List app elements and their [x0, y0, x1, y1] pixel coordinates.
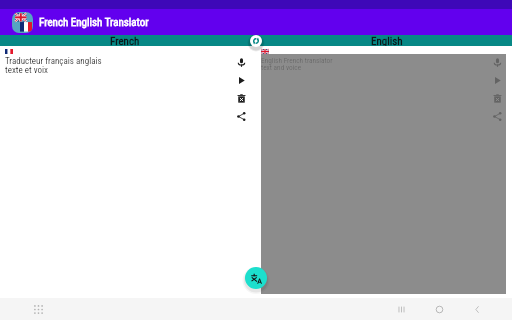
button[interactable]: Share: [488, 107, 506, 125]
button[interactable]: Back: [470, 302, 484, 316]
button[interactable]: Home: [432, 302, 446, 316]
staticText: English French translator text and voice: [261, 56, 333, 72]
button[interactable]: French: [0, 35, 250, 46]
button[interactable]: Delete: [488, 89, 506, 107]
button[interactable]: Play: [488, 71, 506, 89]
button[interactable]: Swap languages: [250, 35, 262, 47]
button[interactable]: App icon: [12, 12, 33, 33]
button[interactable]: Microphone: [232, 53, 250, 71]
button[interactable]: Delete: [232, 89, 250, 107]
staticText: French English Translator: [39, 16, 149, 29]
button[interactable]: All apps: [31, 302, 45, 316]
button[interactable]: Recents: [394, 302, 408, 316]
staticText: English: [371, 35, 403, 46]
staticText: Traducteur français anglais texte et voi…: [5, 56, 102, 75]
staticText: French: [110, 35, 140, 46]
button[interactable]: Translate: [245, 267, 267, 289]
button[interactable]: Share: [232, 107, 250, 125]
button[interactable]: Microphone: [488, 53, 506, 71]
button[interactable]: Play: [232, 71, 250, 89]
button[interactable]: English: [262, 35, 512, 46]
